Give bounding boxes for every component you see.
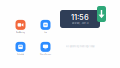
button[interactable]: Schedule [7,40,33,58]
staticText: 11:56 [71,13,89,22]
button[interactable]: Join [32,18,58,36]
staticText: New Meeting [16,31,25,33]
staticText: Saturday, June 22 [71,22,88,25]
staticText: Share Screen [40,53,51,55]
button[interactable]: New Meeting [7,18,33,36]
button[interactable]: Join meeting [97,6,106,22]
button[interactable]: Share Screen [32,40,58,58]
staticText: Join [44,31,47,33]
staticText: No upcoming meetings today [65,45,94,48]
staticText: Schedule [17,53,24,55]
